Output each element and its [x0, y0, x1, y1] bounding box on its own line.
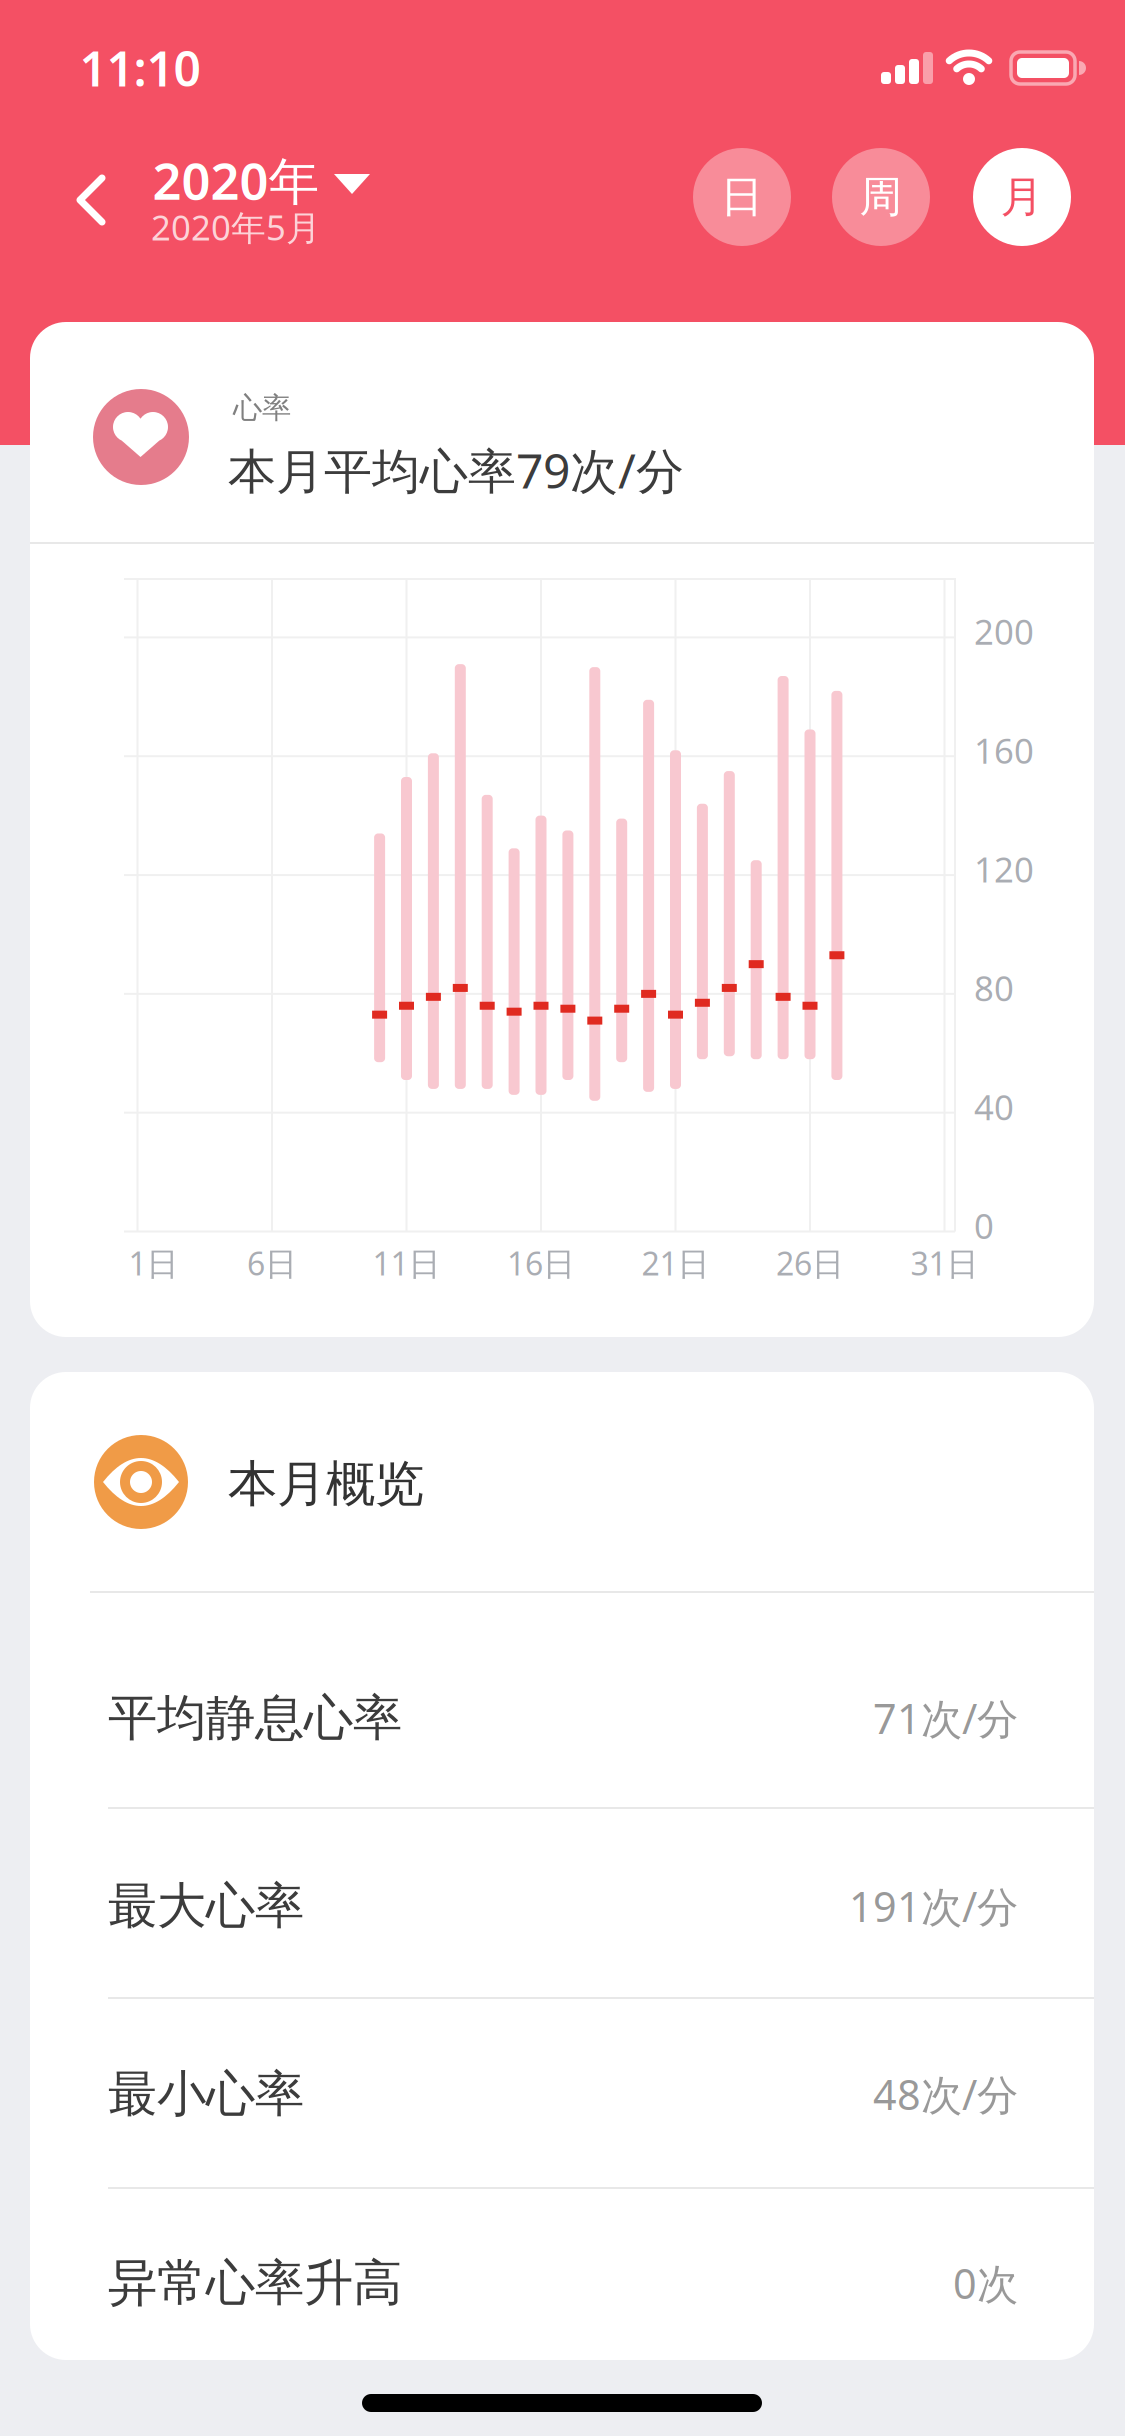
staticText: 71次/分 — [873, 1691, 1018, 1745]
staticText: 40 — [974, 1084, 1014, 1130]
staticText: 6日 — [247, 1242, 297, 1284]
staticText: 最大心率 — [108, 1876, 304, 1936]
staticText: 异常心率升高 — [108, 2253, 402, 2313]
staticText: 月 — [1000, 171, 1043, 223]
staticText: 2020年5月 — [151, 204, 321, 250]
staticText: 最小心率 — [108, 2064, 304, 2124]
staticText: 191次/分 — [849, 1879, 1018, 1933]
staticText: 21日 — [641, 1242, 709, 1284]
staticText: 48次/分 — [873, 2067, 1018, 2121]
staticText: 80 — [974, 965, 1014, 1011]
staticText: 31日 — [910, 1242, 978, 1284]
staticText: 16日 — [507, 1242, 575, 1284]
staticText: 160 — [974, 727, 1034, 773]
staticText: 0 — [974, 1202, 994, 1248]
staticText: 本月概览 — [228, 1454, 424, 1514]
staticText: 本月平均心率79次/分 — [228, 438, 684, 502]
staticText: 平均静息心率 — [108, 1688, 402, 1748]
staticText: 心率 — [233, 390, 291, 426]
staticText: 日 — [720, 171, 763, 223]
staticText: 1日 — [128, 1242, 178, 1284]
staticText: 2020年 — [152, 146, 319, 214]
staticText: 120 — [974, 846, 1034, 892]
staticText: 11日 — [372, 1242, 440, 1284]
staticText: 26日 — [776, 1242, 844, 1284]
staticText: 200 — [974, 608, 1034, 654]
staticText: 0次 — [953, 2256, 1018, 2310]
staticText: 11:10 — [79, 36, 200, 100]
staticText: 周 — [859, 171, 902, 223]
